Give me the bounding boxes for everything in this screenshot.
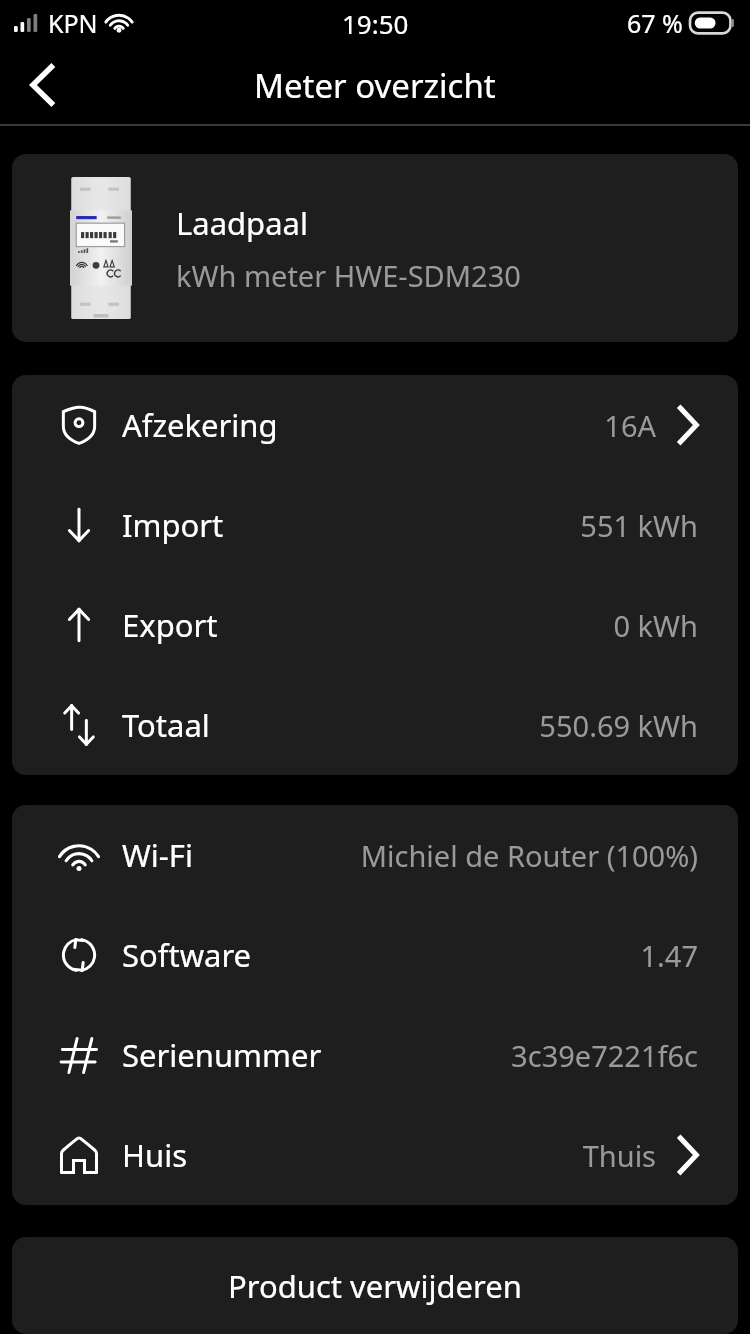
staticText: Thuis (582, 1136, 656, 1175)
staticText: Afzekering (122, 404, 278, 446)
staticText: KPN (48, 6, 98, 40)
staticText: 0 kWh (613, 606, 698, 645)
staticText: Serienummer (122, 1034, 322, 1076)
staticText: Huis (122, 1134, 187, 1176)
staticText: 16A (604, 406, 656, 445)
staticText: 551 kWh (580, 506, 698, 545)
button[interactable]: Back (0, 46, 86, 124)
button[interactable]: Huis (12, 1105, 738, 1205)
button[interactable]: Import (12, 475, 738, 575)
staticText: Export (122, 604, 218, 646)
staticText: Wi-Fi (122, 834, 193, 876)
staticText: 67 % (627, 6, 683, 40)
button[interactable]: Serienummer (12, 1005, 738, 1105)
staticText: Totaal (122, 704, 210, 746)
staticText: 550.69 kWh (539, 706, 698, 745)
staticText: Import (122, 504, 224, 546)
staticText: Product verwijderen (228, 1265, 522, 1307)
staticText: 19:50 (342, 6, 409, 41)
staticText: Michiel de Router (100%) (360, 836, 698, 875)
button[interactable]: Laadpaal (12, 154, 738, 342)
staticText: Meter overzicht (254, 63, 496, 108)
staticText: 1.47 (640, 936, 698, 975)
staticText: 3c39e7221f6c (511, 1036, 698, 1075)
button[interactable]: Product verwijderen (12, 1237, 738, 1334)
staticText: Software (122, 934, 252, 976)
button[interactable]: Totaal (12, 675, 738, 775)
staticText: kWh meter HWE-SDM230 (176, 256, 521, 295)
staticText: Laadpaal (176, 202, 308, 244)
button[interactable]: Software (12, 905, 738, 1005)
button[interactable]: Afzekering (12, 375, 738, 475)
button[interactable]: Export (12, 575, 738, 675)
button[interactable]: Wi-Fi (12, 805, 738, 905)
